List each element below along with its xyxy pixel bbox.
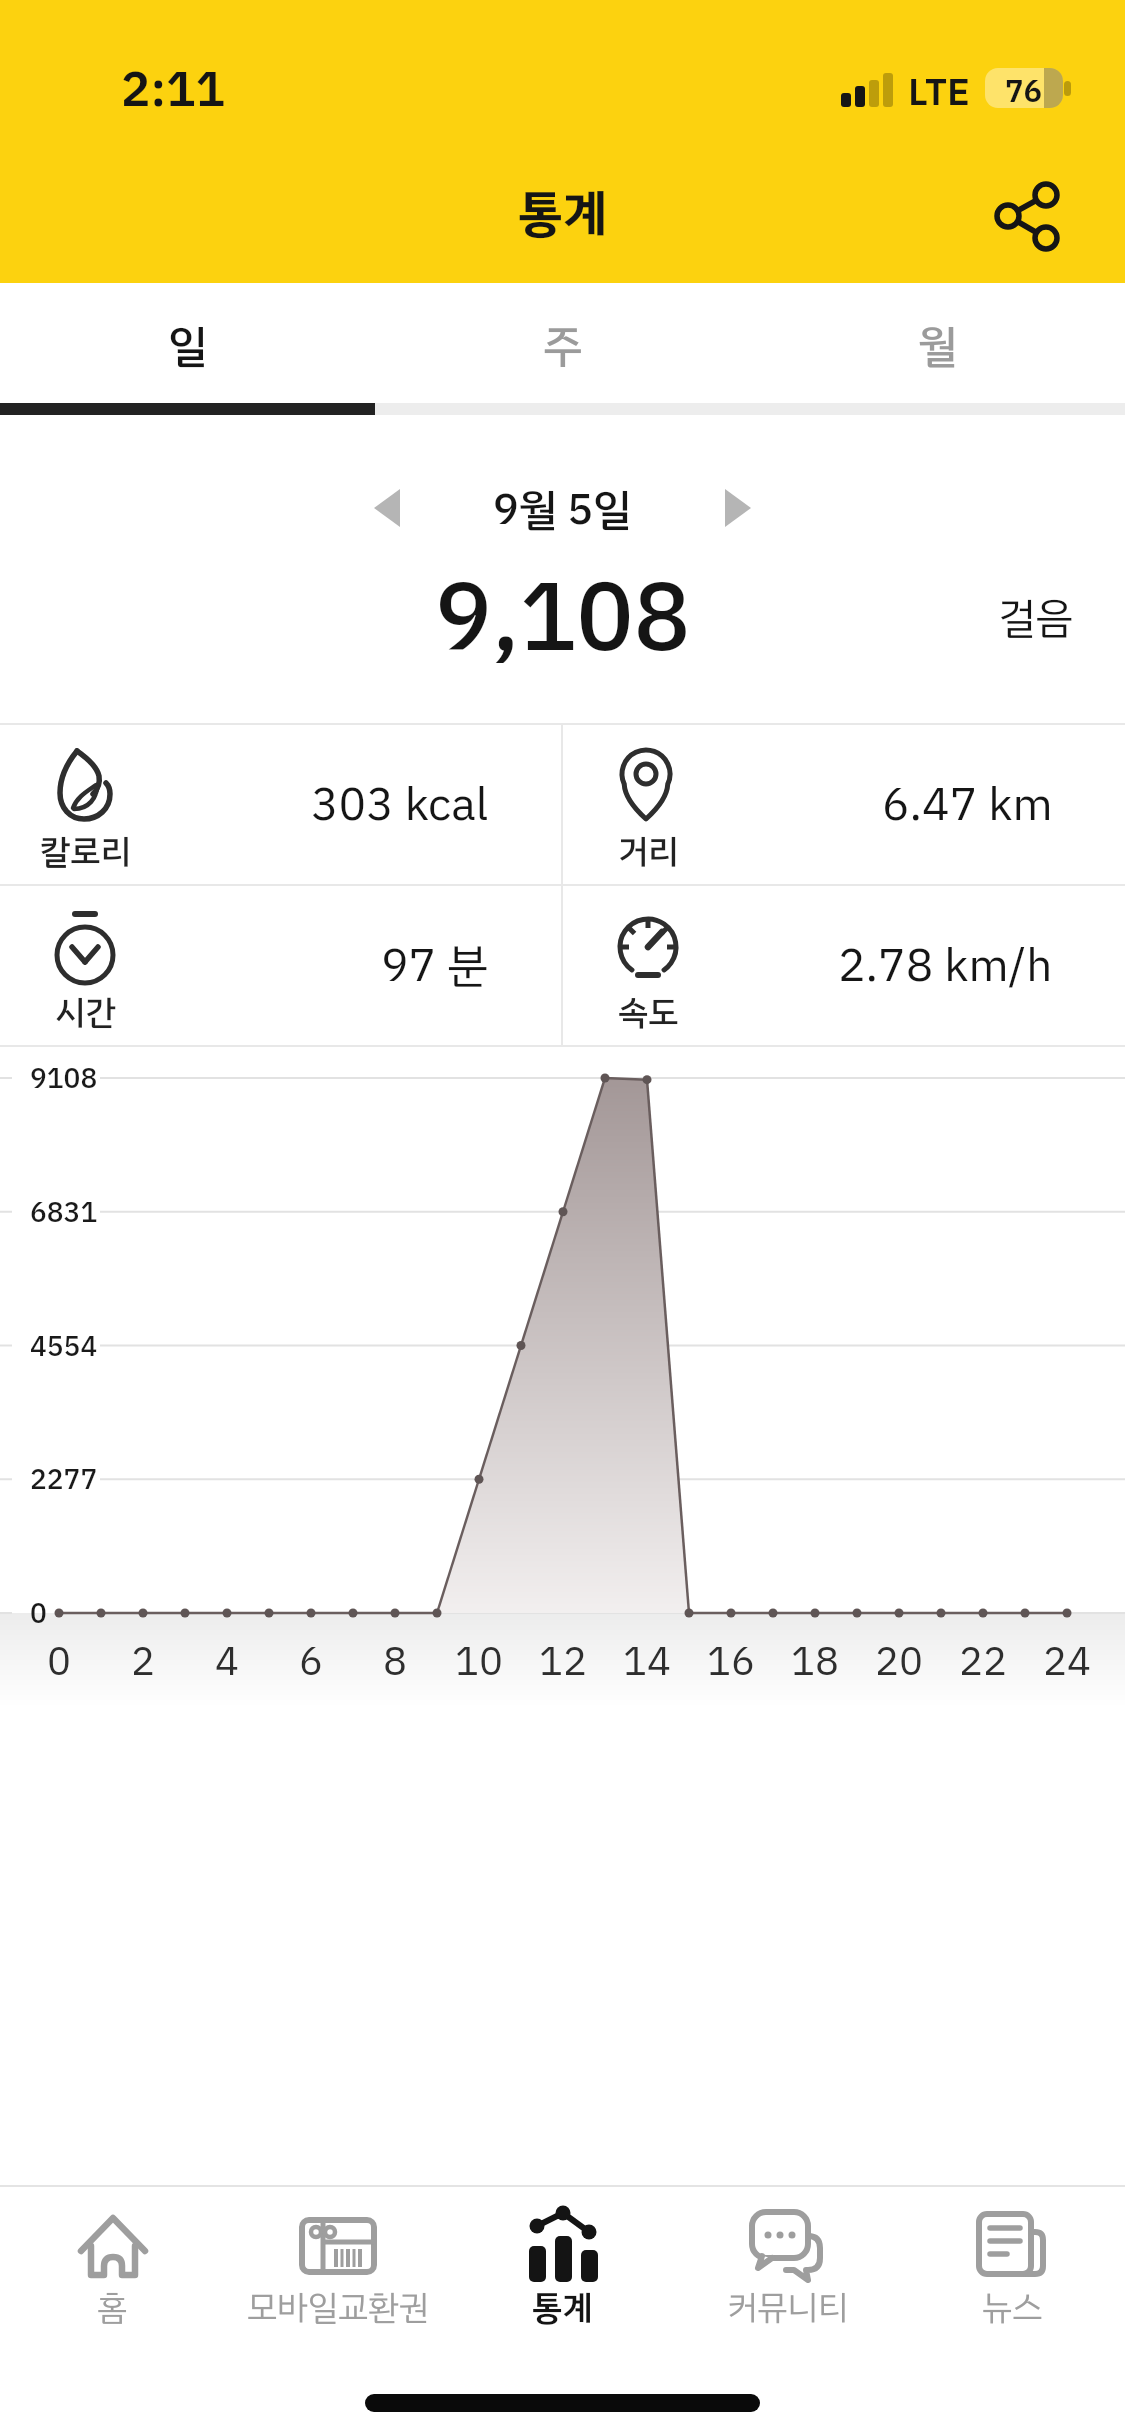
staticText: 모바일교환권	[247, 2282, 429, 2333]
staticText: 커뮤니티	[727, 2282, 849, 2333]
button[interactable]	[708, 477, 768, 539]
staticText: 주	[543, 313, 583, 379]
button[interactable]: 모바일교환권	[225, 2187, 450, 2333]
staticText: 18	[791, 1632, 839, 1692]
button[interactable]: 주	[375, 283, 750, 403]
staticText: 통계	[518, 176, 608, 251]
staticText: 홈	[97, 2282, 128, 2333]
staticText: 9,108	[435, 547, 691, 690]
staticText: 2277	[30, 1459, 98, 1501]
staticText: 10	[455, 1632, 503, 1692]
staticText: LTE	[908, 64, 970, 121]
staticText: 6831	[30, 1192, 98, 1234]
staticText: 76	[1005, 68, 1043, 108]
staticText: 14	[623, 1632, 671, 1692]
staticText: 2	[131, 1632, 155, 1692]
staticText: 통계	[532, 2282, 593, 2333]
staticText: 9월 5일	[493, 477, 632, 539]
staticText: 월	[918, 313, 958, 379]
button[interactable]: 월	[750, 283, 1125, 403]
staticText: 4554	[30, 1326, 98, 1368]
button[interactable]: 통계	[450, 2187, 675, 2333]
staticText: 2:11	[121, 53, 225, 127]
staticText: 97 분	[381, 931, 489, 1000]
staticText: 0	[30, 1593, 47, 1635]
staticText: 거리	[618, 826, 679, 877]
staticText: 8	[383, 1632, 407, 1692]
button[interactable]	[980, 170, 1075, 260]
staticText: 뉴스	[982, 2282, 1043, 2333]
staticText: 22	[959, 1632, 1007, 1692]
staticText: 12	[539, 1632, 587, 1692]
staticText: 303 kcal	[311, 770, 489, 839]
staticText: 6.47 km	[882, 770, 1053, 839]
button[interactable]: 뉴스	[900, 2187, 1125, 2333]
staticText: 걸음	[998, 586, 1073, 649]
staticText: 4	[215, 1632, 239, 1692]
staticText: 20	[875, 1632, 923, 1692]
button[interactable]: 홈	[0, 2187, 225, 2333]
staticText: 속도	[618, 987, 679, 1038]
button[interactable]	[357, 477, 417, 539]
staticText: 시간	[55, 987, 116, 1038]
staticText: 2.78 km/h	[838, 931, 1053, 1000]
staticText: 칼로리	[40, 826, 131, 877]
staticText: 9108	[30, 1058, 98, 1100]
button[interactable]: 커뮤니티	[675, 2187, 900, 2333]
staticText: 6	[299, 1632, 323, 1692]
staticText: 16	[707, 1632, 755, 1692]
button[interactable]: 일	[0, 283, 375, 403]
staticText: 24	[1043, 1632, 1091, 1692]
staticText: 0	[47, 1632, 71, 1692]
staticText: 일	[168, 313, 208, 379]
